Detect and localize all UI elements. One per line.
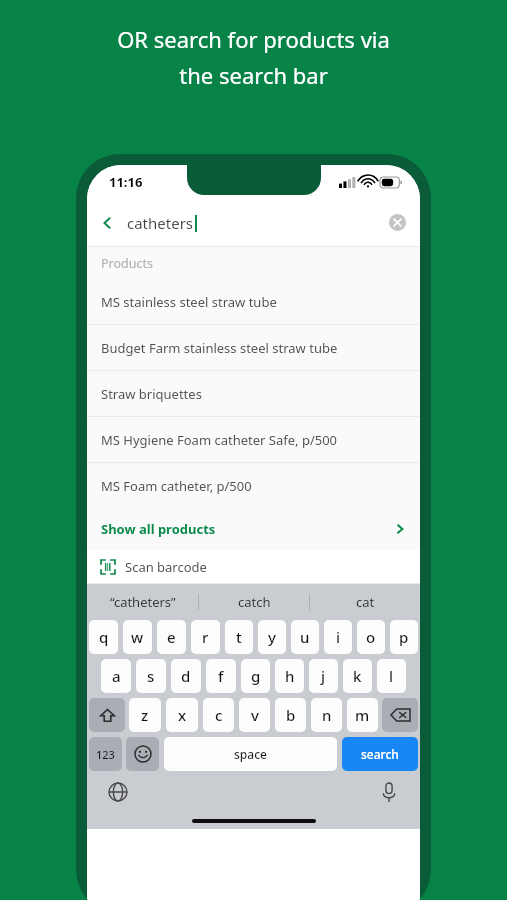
button[interactable]: Show all products — [87, 508, 420, 550]
button[interactable]: o — [357, 620, 385, 654]
button[interactable]: e — [157, 620, 186, 654]
staticText: 123 — [96, 747, 115, 762]
staticText: catheters — [127, 213, 194, 233]
button[interactable]: y — [258, 620, 286, 654]
button[interactable]: m — [347, 698, 378, 732]
staticText: y — [268, 627, 276, 647]
staticText: m — [355, 705, 370, 725]
button[interactable]: t — [225, 620, 253, 654]
button[interactable]: k — [343, 659, 372, 693]
button[interactable]: 123 — [89, 737, 122, 771]
staticText: MS stainless steel straw tube — [101, 293, 277, 311]
button[interactable]: w — [123, 620, 152, 654]
button[interactable]: Backspace — [382, 698, 418, 732]
staticText: d — [181, 666, 191, 686]
button[interactable]: Budget Farm stainless steel straw tube — [101, 325, 420, 370]
staticText: Products — [101, 255, 153, 272]
button[interactable]: u — [291, 620, 319, 654]
button[interactable]: c — [203, 698, 234, 732]
button[interactable]: h — [275, 659, 304, 693]
staticText: search — [361, 746, 399, 762]
staticText: q — [99, 627, 109, 647]
staticText: j — [321, 666, 326, 686]
button[interactable]: s — [136, 659, 166, 693]
staticText: x — [178, 705, 187, 725]
button[interactable]: i — [324, 620, 352, 654]
button[interactable]: “catheters” — [87, 584, 198, 620]
staticText: MS Hygiene Foam catheter Safe, p/500 — [101, 431, 338, 449]
button[interactable]: Clear search — [374, 199, 420, 246]
button[interactable]: d — [171, 659, 201, 693]
button[interactable]: cat — [310, 584, 420, 620]
staticText: Scan barcode — [125, 558, 207, 576]
staticText: s — [147, 666, 155, 686]
button[interactable]: search — [342, 737, 418, 771]
button[interactable]: a — [101, 659, 131, 693]
staticText: f — [218, 666, 224, 686]
staticText: “catheters” — [110, 593, 176, 611]
staticText: Straw briquettes — [101, 385, 202, 403]
button[interactable]: n — [311, 698, 342, 732]
staticText: OR search for products via — [117, 24, 390, 54]
staticText: Budget Farm stainless steel straw tube — [101, 339, 338, 357]
staticText: g — [251, 666, 261, 686]
staticText: e — [167, 627, 176, 647]
button[interactable]: g — [241, 659, 270, 693]
button[interactable]: MS Foam catheter, p/500 — [101, 463, 420, 508]
button[interactable]: b — [275, 698, 306, 732]
staticText: c — [215, 705, 223, 725]
staticText: k — [353, 666, 362, 686]
button[interactable]: Back — [87, 199, 127, 246]
button[interactable]: Shift — [89, 698, 125, 732]
button[interactable]: p — [390, 620, 418, 654]
button[interactable]: space — [164, 737, 337, 771]
staticText: space — [234, 746, 267, 762]
button[interactable]: v — [239, 698, 270, 732]
staticText: i — [336, 627, 341, 647]
staticText: w — [131, 627, 144, 647]
button[interactable]: Change keyboard — [105, 779, 131, 805]
staticText: l — [389, 666, 394, 686]
staticText: v — [251, 705, 259, 725]
staticText: u — [300, 627, 310, 647]
staticText: a — [112, 666, 121, 686]
staticText: n — [322, 705, 332, 725]
staticText: b — [286, 705, 296, 725]
button[interactable]: MS stainless steel straw tube — [101, 279, 420, 324]
button[interactable]: MS Hygiene Foam catheter Safe, p/500 — [101, 417, 420, 462]
staticText: 11:16 — [109, 173, 143, 191]
staticText: the search bar — [179, 60, 328, 90]
staticText: cat — [356, 593, 375, 611]
button[interactable]: catch — [199, 584, 309, 620]
button[interactable]: Scan barcode — [87, 550, 420, 583]
button[interactable]: q — [89, 620, 118, 654]
staticText: p — [399, 627, 409, 647]
button[interactable]: r — [191, 620, 220, 654]
staticText: r — [202, 627, 209, 647]
staticText: z — [141, 705, 149, 725]
button[interactable]: Voice input — [376, 779, 402, 805]
staticText: MS Foam catheter, p/500 — [101, 477, 252, 495]
button[interactable]: z — [129, 698, 161, 732]
staticText: t — [236, 627, 242, 647]
button[interactable]: f — [206, 659, 236, 693]
button[interactable]: Emoji — [126, 737, 159, 771]
staticText: o — [366, 627, 376, 647]
staticText: catch — [238, 593, 271, 611]
button[interactable]: j — [309, 659, 338, 693]
staticText: h — [285, 666, 295, 686]
staticText: Show all products — [101, 520, 216, 538]
button[interactable]: x — [166, 698, 198, 732]
button[interactable]: l — [377, 659, 406, 693]
button[interactable]: Straw briquettes — [101, 371, 420, 416]
